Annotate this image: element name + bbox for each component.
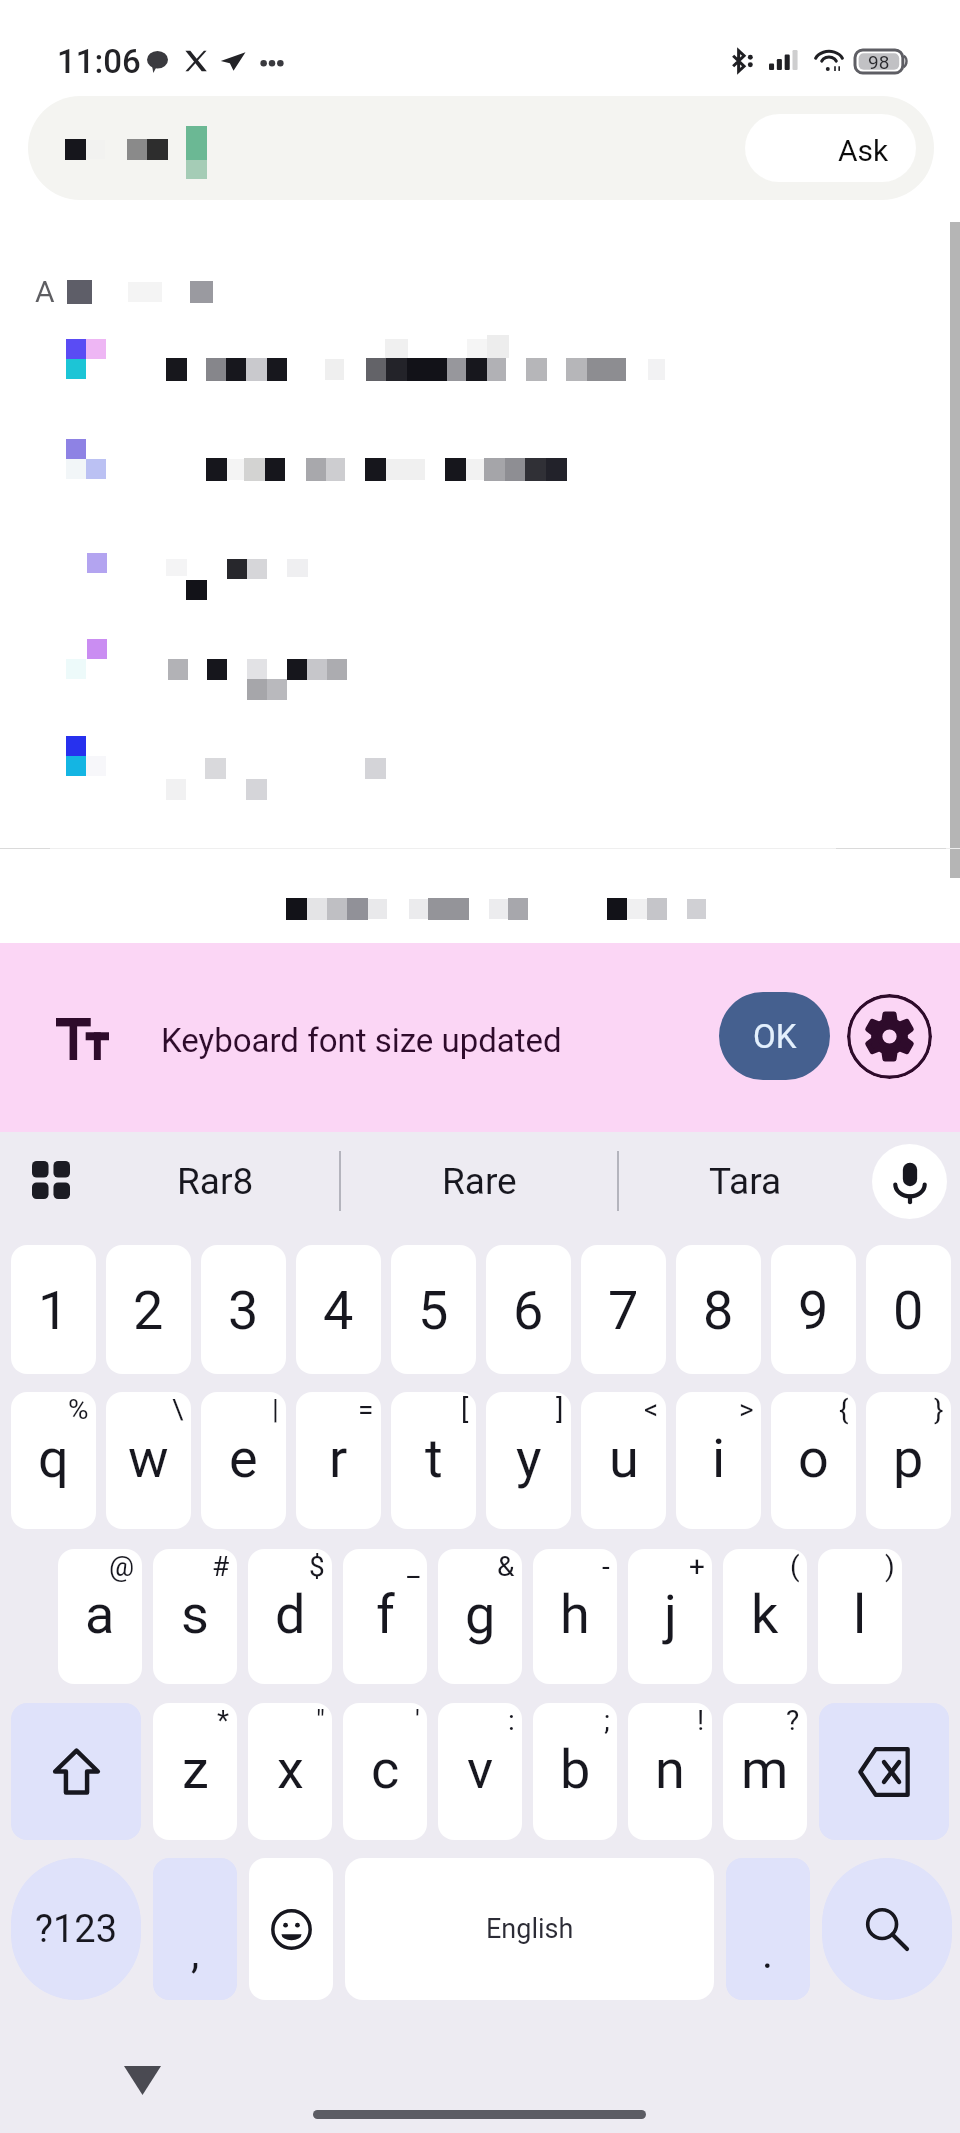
staticText: ) — [885, 1550, 895, 1583]
staticText: Tara — [709, 1160, 782, 1203]
button[interactable]: ?123 — [11, 1858, 141, 2000]
staticText: j — [664, 1583, 677, 1646]
button[interactable]: # — [153, 1549, 237, 1684]
button[interactable]: Keyboard settings — [847, 994, 932, 1079]
button[interactable]: - — [533, 1549, 617, 1684]
staticText: 4 — [323, 1279, 354, 1342]
button[interactable]: $ — [248, 1549, 332, 1684]
button[interactable]: Backspace — [819, 1703, 949, 1840]
staticText: \ — [172, 1393, 184, 1426]
button[interactable]: 5 — [391, 1245, 476, 1374]
staticText: " — [316, 1704, 325, 1737]
staticText: | — [272, 1393, 279, 1426]
button[interactable]: ] — [486, 1392, 571, 1529]
staticText: z — [182, 1738, 209, 1801]
button[interactable]: Ask — [745, 114, 916, 182]
staticText: @ — [109, 1550, 135, 1583]
button[interactable]: Search — [822, 1858, 952, 2000]
staticText: 2 — [133, 1279, 164, 1342]
staticText: l — [853, 1583, 867, 1646]
staticText: > — [739, 1393, 754, 1426]
staticText: $ — [309, 1550, 325, 1583]
button[interactable]: & — [438, 1549, 522, 1684]
staticText: , — [191, 1929, 200, 1978]
button[interactable]: [ — [391, 1392, 476, 1529]
staticText: 3 — [228, 1279, 259, 1342]
button[interactable]: Ask — [28, 96, 934, 200]
button[interactable]: 9 — [771, 1245, 856, 1374]
staticText: & — [497, 1550, 515, 1583]
staticText: = — [358, 1393, 374, 1426]
button[interactable]: @ — [58, 1549, 142, 1684]
button[interactable]: " — [248, 1703, 332, 1840]
staticText: OK — [753, 1017, 797, 1056]
button[interactable]: 0 — [866, 1245, 951, 1374]
staticText: g — [465, 1583, 496, 1646]
button[interactable]: * — [153, 1703, 237, 1840]
button[interactable]: { — [771, 1392, 856, 1529]
button[interactable]: Emoji — [249, 1858, 333, 2000]
button[interactable]: ' — [343, 1703, 427, 1840]
staticText: : — [508, 1704, 515, 1737]
button[interactable]: 6 — [486, 1245, 571, 1374]
staticText: 0 — [893, 1279, 924, 1342]
staticText: y — [516, 1427, 542, 1490]
button[interactable]: ! — [628, 1703, 712, 1840]
button[interactable]: 3 — [201, 1245, 286, 1374]
staticText: e — [229, 1427, 258, 1490]
button[interactable]: _ — [343, 1549, 427, 1684]
button[interactable]: 7 — [581, 1245, 666, 1374]
button[interactable]: 1 — [11, 1245, 96, 1374]
button[interactable]: Rar8 — [90, 1132, 340, 1230]
staticText: 6 — [513, 1279, 544, 1342]
button[interactable]: Keyboard menu — [16, 1145, 86, 1215]
button[interactable]: Hide keyboard — [124, 2066, 161, 2095]
button[interactable] — [66, 339, 106, 379]
staticText: 11:06 — [57, 42, 141, 81]
button[interactable]: English — [345, 1858, 714, 2000]
staticText: < — [644, 1393, 659, 1426]
staticText: English — [486, 1913, 574, 1945]
button[interactable]: 4 — [296, 1245, 381, 1374]
button[interactable]: > — [676, 1392, 761, 1529]
button[interactable]: : — [438, 1703, 522, 1840]
staticText: d — [275, 1583, 306, 1646]
button[interactable]: ) — [818, 1549, 902, 1684]
button[interactable]: ( — [723, 1549, 807, 1684]
staticText: s — [181, 1583, 209, 1646]
staticText: a — [85, 1583, 115, 1646]
staticText: { — [839, 1393, 849, 1426]
button[interactable]: % — [11, 1392, 96, 1529]
button[interactable]: , — [153, 1858, 237, 2000]
staticText: m — [741, 1738, 789, 1801]
button[interactable]: Voice input — [872, 1144, 947, 1219]
button[interactable]: < — [581, 1392, 666, 1529]
staticText: o — [798, 1427, 829, 1490]
button[interactable]: 2 — [106, 1245, 191, 1374]
button[interactable] — [66, 639, 86, 679]
staticText: c — [371, 1738, 400, 1801]
button[interactable] — [66, 439, 106, 479]
button[interactable]: Rare — [340, 1132, 618, 1230]
button[interactable]: 8 — [676, 1245, 761, 1374]
button[interactable]: + — [628, 1549, 712, 1684]
button[interactable]: = — [296, 1392, 381, 1529]
button[interactable]: ? — [723, 1703, 807, 1840]
button[interactable]: ; — [533, 1703, 617, 1840]
staticText: p — [893, 1427, 924, 1490]
button[interactable]: | — [201, 1392, 286, 1529]
button[interactable]: } — [866, 1392, 951, 1529]
staticText: ' — [415, 1704, 420, 1737]
button[interactable]: Tara — [618, 1132, 872, 1230]
button[interactable]: \ — [106, 1392, 191, 1529]
button[interactable]: OK — [719, 992, 830, 1080]
staticText: 7 — [608, 1279, 639, 1342]
button[interactable] — [66, 736, 106, 776]
button[interactable]: . — [726, 1858, 810, 2000]
button[interactable]: Shift — [11, 1703, 141, 1840]
staticText: A — [35, 274, 55, 309]
staticText: } — [934, 1393, 944, 1426]
staticText: Rar8 — [177, 1160, 254, 1203]
staticText: ? — [786, 1704, 800, 1737]
